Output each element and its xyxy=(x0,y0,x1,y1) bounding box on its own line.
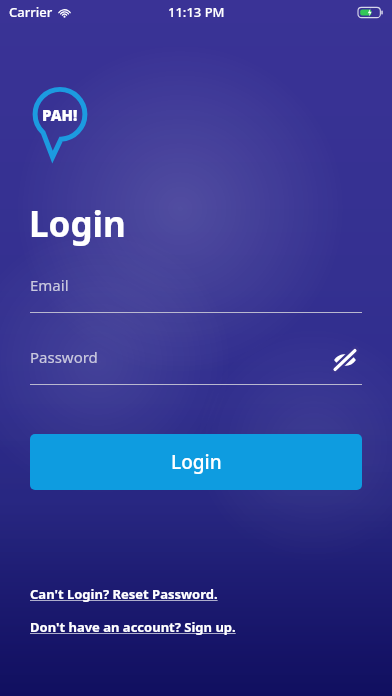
staticText: Can't Login? Reset Password. xyxy=(30,585,218,603)
staticText: Login xyxy=(171,449,222,475)
button[interactable]: Password xyxy=(30,347,362,385)
staticText: PAH! xyxy=(42,105,78,125)
button[interactable]: Show password xyxy=(328,343,362,377)
button[interactable]: Can't Login? Reset Password. xyxy=(30,583,218,605)
staticText: Login xyxy=(29,200,126,248)
staticText: Email xyxy=(30,275,69,295)
button[interactable]: Login xyxy=(30,434,362,490)
button[interactable]: Don't have an account? Sign up. xyxy=(30,616,236,638)
button[interactable]: Email xyxy=(30,275,362,313)
staticText: Password xyxy=(30,347,98,367)
staticText: Carrier xyxy=(9,3,53,21)
staticText: 11:13 PM xyxy=(168,3,225,21)
staticText: Don't have an account? Sign up. xyxy=(30,618,236,636)
